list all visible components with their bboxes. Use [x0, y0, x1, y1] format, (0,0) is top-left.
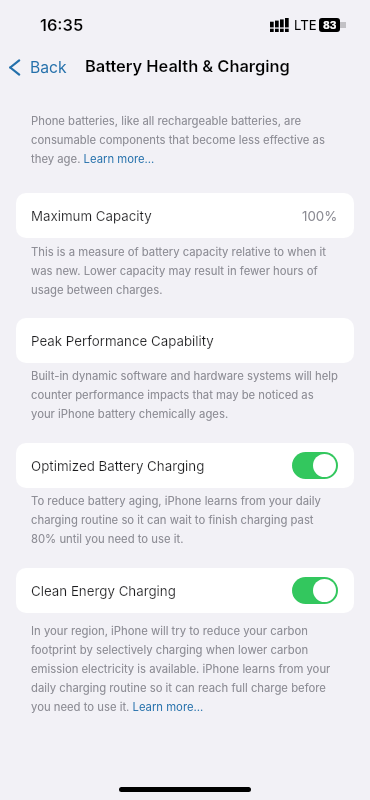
staticText: LTE	[294, 17, 317, 33]
staticText: Clean Energy Charging	[31, 583, 176, 599]
staticText: This is a measure of battery capacity re…	[31, 245, 338, 297]
staticText: Battery Health & Charging	[85, 56, 290, 76]
staticText: Peak Performance Capability	[31, 333, 214, 349]
staticText: Back	[30, 58, 67, 77]
button[interactable]: Optimized Battery Charging	[16, 443, 354, 488]
button[interactable]: Back	[6, 54, 69, 81]
staticText: 83	[323, 19, 337, 32]
staticText: 100%	[302, 208, 338, 224]
button[interactable]: Peak Performance Capability	[16, 318, 354, 363]
other: Back	[8, 59, 22, 76]
staticText: Maximum Capacity	[31, 208, 152, 224]
staticText: Phone batteries, like all rechargeable b…	[31, 114, 338, 166]
staticText: 16:35	[40, 15, 84, 35]
staticText: Optimized Battery Charging	[31, 458, 205, 474]
button[interactable]: Clean Energy Charging	[16, 568, 354, 613]
button[interactable]: Maximum Capacity	[16, 193, 354, 238]
button[interactable]: Toggle switch	[292, 452, 338, 479]
button[interactable]: Toggle switch	[292, 577, 338, 604]
staticText: Built-in dynamic software and hardware s…	[31, 369, 338, 421]
staticText: To reduce battery aging, iPhone learns f…	[31, 494, 338, 546]
staticText: In your region, iPhone will try to reduc…	[31, 624, 338, 714]
